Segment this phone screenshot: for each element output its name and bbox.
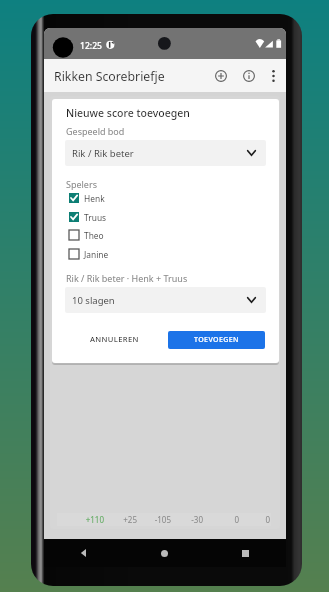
staticText: Theo [84, 230, 104, 241]
staticText: +25 [123, 514, 137, 525]
staticText: Rik / Rik beter [72, 147, 134, 160]
staticText: 0 [234, 514, 239, 525]
button[interactable]: Theo [69, 228, 165, 242]
button[interactable]: Truus [69, 210, 165, 224]
button[interactable]: Add [208, 63, 234, 89]
staticText: Spelers [66, 178, 97, 190]
staticText: +110 [85, 514, 104, 525]
button[interactable]: TOEVOEGEN [168, 331, 265, 349]
staticText: Truus [84, 212, 107, 223]
button[interactable]: Recents [205, 539, 286, 567]
staticText: 12:25 [80, 40, 103, 52]
staticText: 0 [265, 514, 270, 525]
button[interactable]: Home [124, 539, 205, 567]
button[interactable]: ANNULEREN [80, 328, 149, 350]
button[interactable]: Rik / Rik beter [65, 140, 266, 166]
button[interactable]: Henk [69, 191, 165, 205]
staticText: Rikken Scorebriefje [54, 68, 165, 85]
staticText: ANNULEREN [90, 334, 139, 344]
button[interactable]: More options [262, 65, 284, 87]
button[interactable]: Info [236, 63, 262, 89]
staticText: -30 [191, 514, 203, 525]
staticText: Nieuwe score toevoegen [66, 106, 190, 120]
staticText: -105 [154, 514, 171, 525]
staticText: 10 slagen [72, 294, 115, 307]
staticText: Rik / Rik beter · Henk + Truus [66, 272, 188, 284]
button[interactable]: 10 slagen [65, 287, 266, 313]
button[interactable]: Back [44, 539, 124, 567]
staticText: Janine [84, 249, 109, 260]
staticText: Henk [84, 193, 105, 204]
staticText: TOEVOEGEN [194, 335, 239, 345]
button[interactable]: Janine [69, 247, 165, 261]
staticText: Gespeeld bod [66, 125, 125, 137]
